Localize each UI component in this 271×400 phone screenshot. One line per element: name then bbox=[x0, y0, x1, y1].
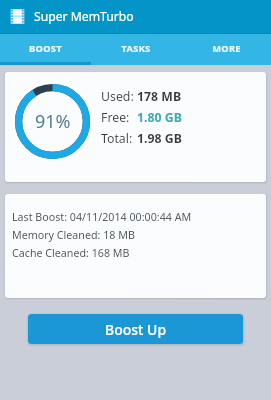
staticText: Used: bbox=[101, 88, 134, 105]
staticText: TASKS bbox=[121, 42, 151, 55]
staticText: 91% bbox=[35, 109, 71, 134]
button[interactable]: BOOST bbox=[0, 34, 91, 65]
button[interactable]: Boost Up bbox=[28, 314, 243, 344]
staticText: Total: bbox=[101, 130, 133, 147]
staticText: Free: bbox=[101, 109, 130, 126]
staticText: 1.80 GB bbox=[137, 109, 182, 126]
staticText: Memory Cleaned: 18 MB bbox=[12, 228, 135, 243]
staticText: 178 MB bbox=[137, 88, 182, 105]
staticText: Cache Cleaned: 168 MB bbox=[12, 246, 130, 261]
staticText: BOOST bbox=[29, 42, 62, 55]
staticText: MORE bbox=[212, 42, 241, 55]
staticText: Super MemTurbo bbox=[34, 8, 134, 25]
button[interactable]: MORE bbox=[181, 34, 271, 65]
staticText: Boost Up bbox=[105, 320, 167, 339]
staticText: 1.98 GB bbox=[137, 130, 182, 147]
staticText: Last Boost: 04/11/2014 00:00:44 AM bbox=[12, 210, 192, 225]
button[interactable]: TASKS bbox=[91, 34, 181, 65]
other: App icon bbox=[9, 8, 26, 25]
